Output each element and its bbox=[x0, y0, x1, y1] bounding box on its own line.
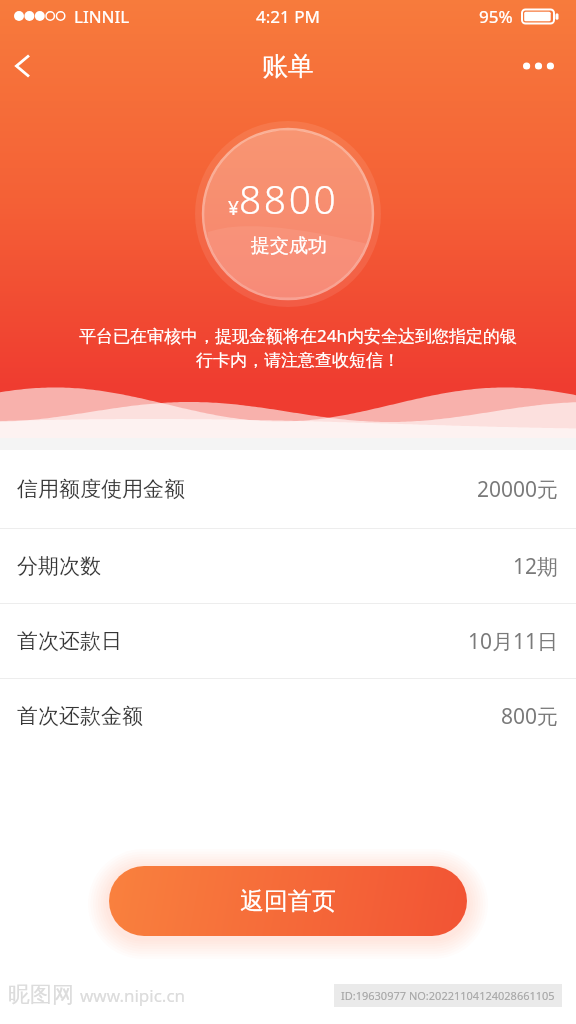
staticText: 8800 bbox=[239, 172, 339, 225]
staticText: 账单 bbox=[262, 50, 314, 83]
staticText: www.nipic.cn bbox=[80, 984, 186, 1007]
staticText: 昵图网 bbox=[8, 981, 74, 1009]
staticText: 提交成功 bbox=[251, 234, 327, 258]
staticText: 分期次数 bbox=[17, 553, 101, 579]
staticText: LINNIL bbox=[74, 5, 130, 28]
button[interactable]: Back bbox=[0, 38, 48, 94]
staticText: ¥ bbox=[228, 195, 239, 221]
staticText: 平台已在审核中，提现金额将在24h内安全达到您指定的银 行卡内，请注意查收短信！ bbox=[35, 324, 561, 371]
staticText: 返回首页 bbox=[240, 886, 336, 916]
button[interactable]: More options bbox=[510, 38, 566, 94]
staticText: 信用额度使用金额 bbox=[17, 476, 185, 502]
button[interactable]: 首次还款日 bbox=[0, 604, 576, 678]
staticText: 12期 bbox=[513, 552, 559, 581]
staticText: 800元 bbox=[501, 702, 559, 731]
staticText: 首次还款金额 bbox=[17, 703, 143, 729]
staticText: 4:21 PM bbox=[256, 5, 320, 28]
staticText: ID:19630977 NO:20221104124028661105 bbox=[341, 988, 555, 1003]
staticText: 95% bbox=[479, 5, 513, 28]
button[interactable]: 返回首页 bbox=[109, 866, 467, 936]
button[interactable]: 首次还款金额 bbox=[0, 679, 576, 753]
button[interactable]: 信用额度使用金额 bbox=[0, 450, 576, 528]
staticText: 首次还款日 bbox=[17, 628, 122, 654]
staticText: 20000元 bbox=[477, 475, 559, 504]
button[interactable]: 分期次数 bbox=[0, 529, 576, 603]
staticText: 10月11日 bbox=[468, 627, 559, 656]
